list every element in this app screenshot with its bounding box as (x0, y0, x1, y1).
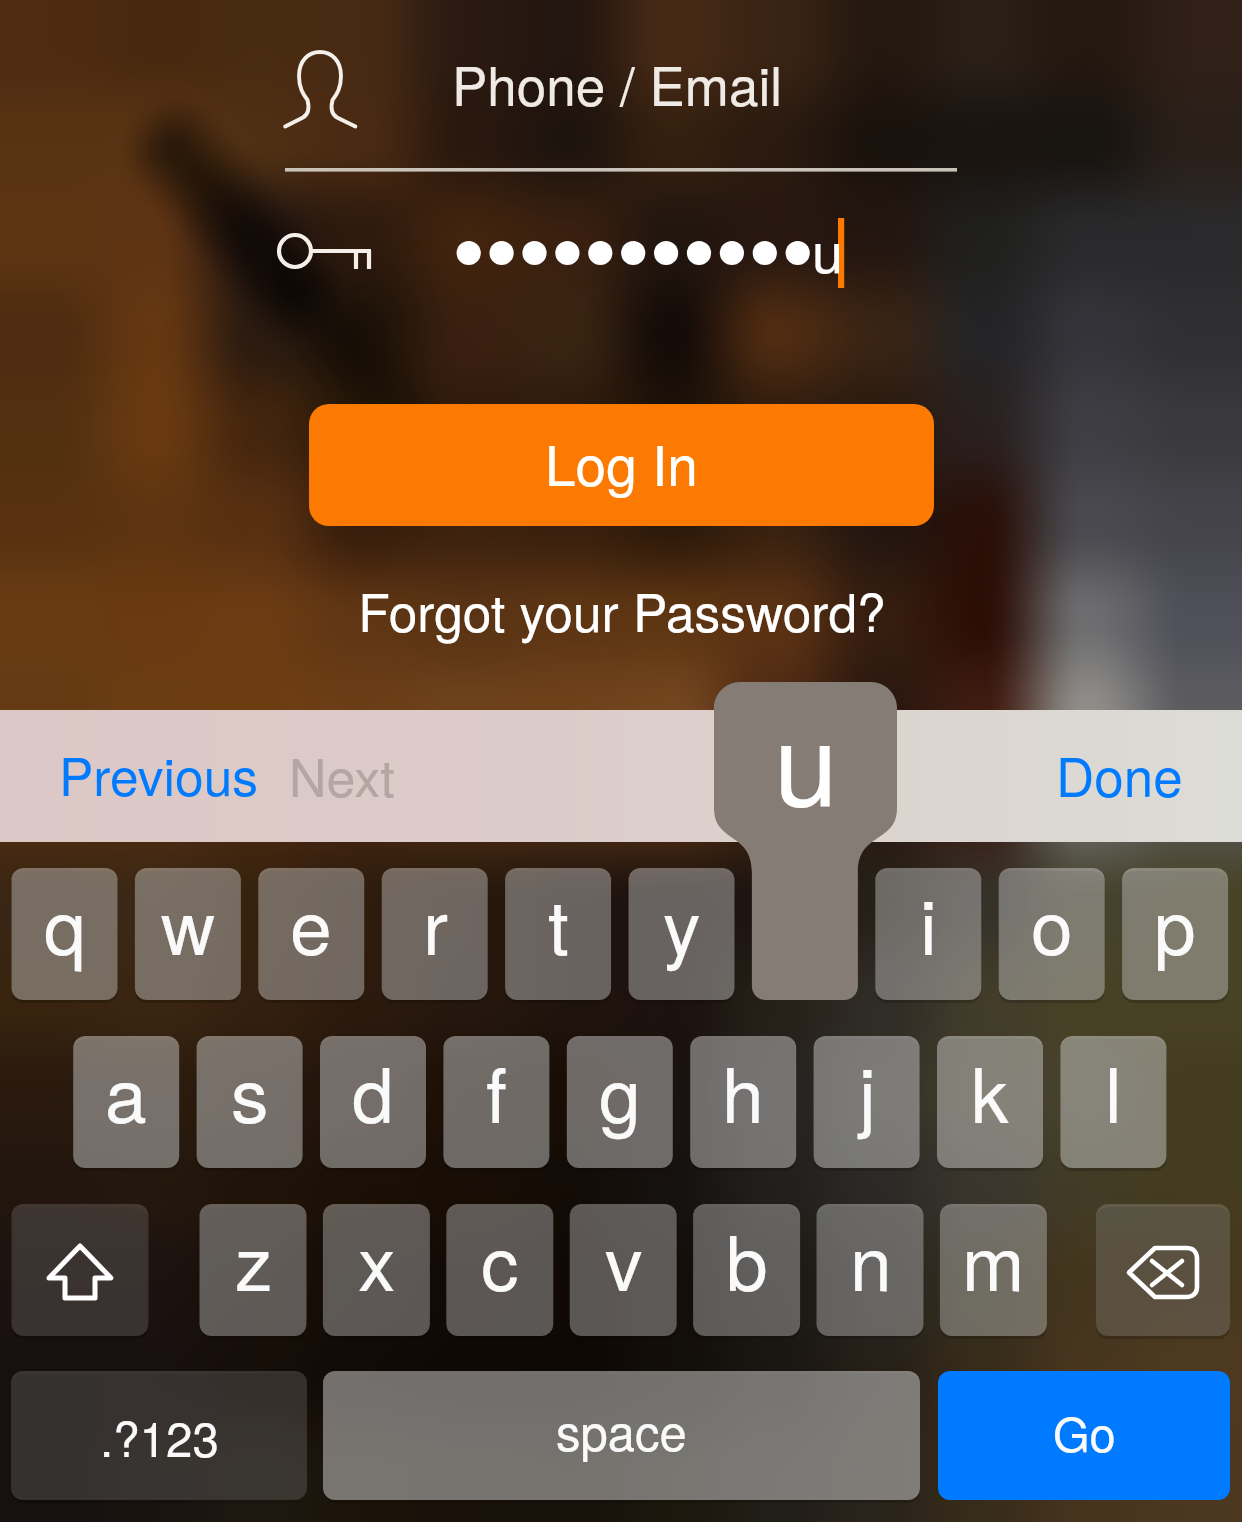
staticText: o (1031, 869, 1073, 976)
staticText: x (358, 1205, 396, 1312)
staticText: u (774, 674, 838, 839)
button[interactable]: i (875, 868, 981, 1000)
button[interactable]: Log In (309, 404, 934, 526)
staticText: v (605, 1205, 643, 1312)
staticText: b (726, 1205, 768, 1312)
button[interactable]: Next (272, 726, 414, 836)
staticText: t (548, 869, 569, 976)
staticText: d (352, 1037, 394, 1144)
staticText: h (722, 1037, 764, 1144)
staticText: a (105, 1037, 147, 1144)
button[interactable]: a (73, 1036, 179, 1168)
staticText: p (1154, 869, 1196, 976)
staticText: Forgot your Password? (358, 573, 886, 647)
button[interactable]: k (937, 1036, 1043, 1168)
staticText: i (920, 869, 937, 976)
button[interactable]: o (999, 868, 1105, 1000)
staticText: k (971, 1037, 1009, 1144)
button[interactable]: Previous (40, 726, 280, 836)
staticText: Previous (59, 737, 259, 811)
staticText: l (1105, 1037, 1122, 1144)
button[interactable]: m (940, 1204, 1047, 1336)
staticText: n (850, 1205, 892, 1312)
staticText: s (231, 1037, 269, 1144)
staticText: c (481, 1205, 519, 1312)
button[interactable]: h (690, 1036, 796, 1168)
staticText: Log In (545, 423, 698, 502)
button[interactable]: v (570, 1204, 677, 1336)
button[interactable]: Backspace (1096, 1204, 1230, 1336)
button[interactable]: d (320, 1036, 426, 1168)
staticText: f (486, 1037, 507, 1144)
button[interactable]: f (443, 1036, 549, 1168)
button[interactable]: z (200, 1204, 307, 1336)
staticText: u (812, 209, 844, 289)
staticText: Done (1056, 736, 1183, 812)
staticText: Next (289, 737, 395, 811)
button[interactable]: b (693, 1204, 800, 1336)
staticText: .?123 (100, 1402, 219, 1470)
button[interactable]: .?123 (11, 1371, 307, 1500)
staticText: q (44, 869, 86, 976)
button[interactable]: p (1122, 868, 1228, 1000)
button[interactable]: s (197, 1036, 303, 1168)
button[interactable]: c (446, 1204, 553, 1336)
button[interactable]: n (817, 1204, 924, 1336)
staticText: j (859, 1037, 876, 1144)
button[interactable]: e (258, 868, 364, 1000)
button[interactable]: space (323, 1371, 920, 1500)
staticText: e (290, 869, 332, 976)
button[interactable]: g (567, 1036, 673, 1168)
staticText: Phone / Email (452, 45, 782, 121)
staticText: y (663, 869, 701, 976)
staticText: space (556, 1395, 687, 1465)
button[interactable]: x (323, 1204, 430, 1336)
button[interactable]: y (629, 868, 735, 1000)
button[interactable]: Go (938, 1371, 1230, 1500)
staticText: m (962, 1205, 1025, 1312)
staticText: r (423, 869, 448, 976)
staticText: Go (1053, 1398, 1116, 1465)
button[interactable]: w (135, 868, 241, 1000)
button[interactable]: r (382, 868, 488, 1000)
staticText: z (235, 1205, 273, 1312)
button[interactable]: Forgot your Password? (330, 578, 914, 656)
button[interactable]: q (12, 868, 118, 1000)
button[interactable]: Done (1030, 726, 1206, 836)
staticText: g (599, 1037, 641, 1144)
button[interactable]: j (814, 1036, 920, 1168)
staticText: w (161, 869, 216, 976)
button[interactable]: l (1060, 1036, 1166, 1168)
button[interactable]: t (505, 868, 611, 1000)
button[interactable]: Shift (12, 1204, 149, 1336)
